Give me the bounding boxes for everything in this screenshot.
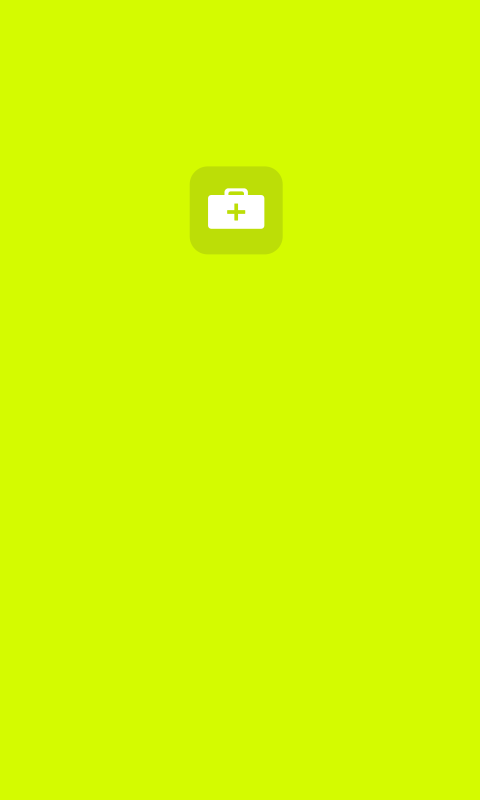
button[interactable]: First Aid Kit: [190, 166, 283, 254]
